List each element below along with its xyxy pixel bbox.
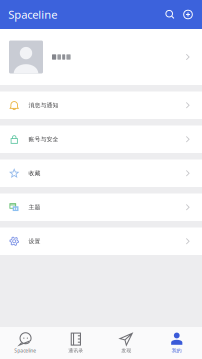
button[interactable]: 账号与安全 xyxy=(0,125,202,153)
staticText: 消息与通知 xyxy=(29,102,59,109)
staticText: 主题 xyxy=(29,204,41,211)
button[interactable]: 收藏 xyxy=(0,159,202,187)
button[interactable] xyxy=(0,29,202,85)
button[interactable]: 主题 xyxy=(0,193,202,221)
staticText: 我的 xyxy=(172,348,182,354)
button[interactable]: 我的 xyxy=(151,327,202,359)
button[interactable]: Spaceline xyxy=(0,327,50,359)
staticText: Spaceline xyxy=(8,7,57,22)
button[interactable]: Add xyxy=(179,3,197,25)
staticText: 通讯录 xyxy=(68,348,83,354)
staticText: 收藏 xyxy=(29,170,41,177)
staticText: 账号与安全 xyxy=(29,136,59,143)
button[interactable]: 消息与通知 xyxy=(0,91,202,119)
staticText: 设置 xyxy=(29,238,41,245)
button[interactable]: 设置 xyxy=(0,227,202,255)
button[interactable]: Search xyxy=(161,3,179,25)
button[interactable]: 通讯录 xyxy=(50,327,101,359)
button[interactable]: 发现 xyxy=(101,327,151,359)
staticText: 发现 xyxy=(121,348,131,354)
staticText: Spaceline xyxy=(14,347,36,354)
